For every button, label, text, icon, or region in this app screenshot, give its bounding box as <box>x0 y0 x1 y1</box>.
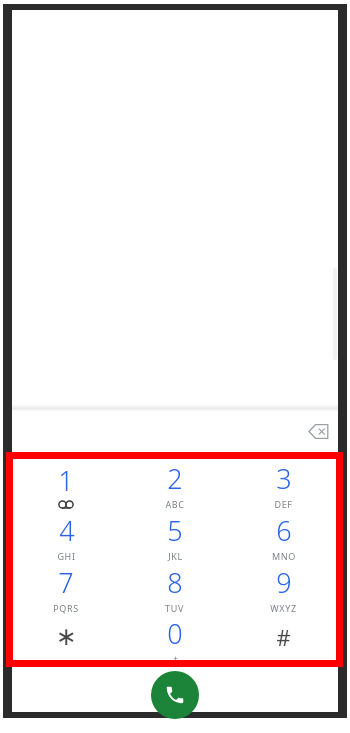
staticText: ABC <box>165 498 185 510</box>
staticText: 5 <box>167 512 183 549</box>
button[interactable]: # <box>229 615 338 662</box>
staticText: 2 <box>167 460 183 497</box>
button[interactable]: 1 <box>12 459 120 511</box>
staticText: # <box>276 622 291 652</box>
staticText: 9 <box>276 564 292 601</box>
staticText: ∗ <box>56 622 77 651</box>
staticText: 4 <box>59 512 75 549</box>
staticText: GHI <box>57 550 76 562</box>
staticText: JKL <box>168 550 183 562</box>
staticText: 1 <box>58 462 74 499</box>
button[interactable]: 8 <box>120 563 229 615</box>
staticText: 8 <box>167 564 183 601</box>
staticText: MNO <box>272 550 296 562</box>
staticText: DEF <box>274 498 293 510</box>
staticText: 6 <box>276 512 292 549</box>
button[interactable]: ∗ <box>12 615 120 662</box>
button[interactable]: 9 <box>229 563 338 615</box>
button[interactable]: Call <box>151 671 199 719</box>
button[interactable]: 7 <box>12 563 120 615</box>
button[interactable]: 3 <box>229 459 338 511</box>
button[interactable]: 5 <box>120 511 229 563</box>
button[interactable]: 4 <box>12 511 120 563</box>
staticText: 3 <box>276 460 292 497</box>
button[interactable]: 6 <box>229 511 338 563</box>
staticText: 7 <box>58 564 74 601</box>
staticText: PQRS <box>53 602 79 614</box>
button[interactable]: 2 <box>120 459 229 511</box>
staticText: + <box>173 653 178 662</box>
button[interactable]: Backspace <box>300 413 336 449</box>
staticText: TUV <box>165 602 184 614</box>
staticText: 0 <box>167 615 183 652</box>
staticText: WXYZ <box>270 602 297 614</box>
button[interactable]: 0 <box>120 615 229 662</box>
